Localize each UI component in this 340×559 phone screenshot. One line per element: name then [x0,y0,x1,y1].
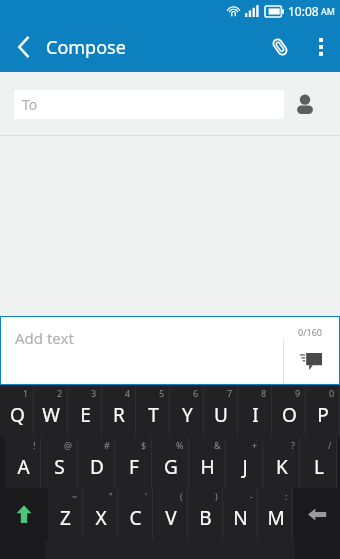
staticText: To [22,95,38,114]
staticText: $ [141,439,147,451]
staticText: M [267,505,285,531]
staticText: Y [182,402,193,428]
button[interactable]: + [226,437,263,488]
button[interactable]: 2 [34,385,68,437]
staticText: 5 [159,387,165,399]
button[interactable]: Add text [1,317,339,384]
staticText: Add text [15,328,74,348]
staticText: 9 [295,387,301,399]
staticText: / [328,439,332,451]
staticText: V [165,505,177,531]
staticText: B [199,505,212,531]
staticText: - [250,490,253,502]
staticText: L [314,454,324,480]
staticText: A [17,454,30,480]
staticText: J [242,454,248,480]
button[interactable]: % [152,437,189,488]
staticText: O [282,402,297,428]
staticText: @ [64,439,73,451]
button[interactable]: 6 [170,385,204,437]
staticText: D [90,454,104,480]
button[interactable]: ~ [48,488,83,540]
staticText: : [285,490,288,502]
button[interactable]: Pick contact [284,84,326,124]
staticText: C [129,505,142,531]
staticText: # [104,439,110,451]
button[interactable]: 8 [238,385,272,437]
staticText: 1 [23,387,29,399]
button[interactable]: 1 [0,385,34,437]
button[interactable]: Backspace [293,488,340,540]
button[interactable]: @ [41,437,78,488]
staticText: G [164,454,178,480]
button[interactable]: Shift [0,488,48,540]
staticText: I [252,402,259,428]
staticText: S [54,454,65,480]
staticText: 2 [57,387,63,399]
staticText: 7 [227,387,233,399]
staticText: 10:08 [288,3,319,19]
staticText: ? [291,439,295,451]
staticText: 3 [91,387,97,399]
button[interactable]: 5 [136,385,170,437]
button[interactable]: To [14,90,284,119]
button[interactable]: ( [153,488,188,540]
staticText: F [129,454,139,480]
button[interactable]: ' [118,488,153,540]
staticText: + [252,439,258,451]
button[interactable]: 0 [306,385,340,437]
staticText: U [214,402,228,428]
button[interactable]: 3 [68,385,102,437]
staticText: R [113,402,125,428]
staticText: " [109,490,113,502]
staticText: X [95,505,107,531]
staticText: Compose [46,35,126,60]
staticText: ' [145,490,148,502]
button[interactable]: ! [5,437,41,488]
button[interactable]: # [78,437,115,488]
button[interactable]: : [258,488,293,540]
staticText: 0 [329,387,335,399]
button[interactable]: / [300,437,337,488]
staticText: H [200,454,215,480]
button[interactable]: $ [115,437,152,488]
staticText: 6 [193,387,199,399]
button[interactable]: " [83,488,118,540]
staticText: Z [60,505,71,531]
button[interactable]: ) [188,488,223,540]
button[interactable]: Attach [258,22,302,72]
staticText: T [148,402,159,428]
button[interactable]: 9 [272,385,306,437]
staticText: P [317,402,329,428]
staticText: K [276,454,288,480]
staticText: & [214,439,221,451]
staticText: ! [33,439,36,451]
staticText: 0/160 [298,326,322,338]
staticText: E [80,402,91,428]
button[interactable]: & [189,437,226,488]
button[interactable]: More options [302,22,340,72]
staticText: % [176,439,184,451]
staticText: ( [180,490,183,502]
button[interactable]: ? [263,437,300,488]
button[interactable]: Back [0,22,46,72]
staticText: N [233,505,248,531]
button[interactable]: 4 [102,385,136,437]
button[interactable]: Send [291,347,331,375]
staticText: AM [321,5,335,17]
button[interactable]: - [223,488,258,540]
staticText: 4 [125,387,131,399]
staticText: ~ [72,490,78,502]
staticText: Q [10,402,25,428]
staticText: 8 [261,387,267,399]
button[interactable]: 7 [204,385,238,437]
staticText: ) [215,490,218,502]
staticText: W [42,402,60,428]
